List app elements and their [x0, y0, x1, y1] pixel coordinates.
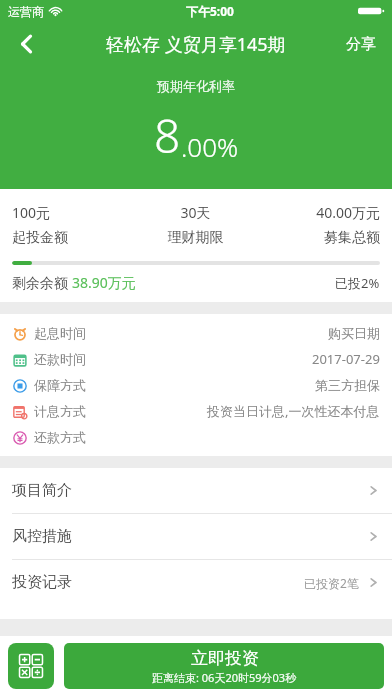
staticText: 还款时间: [34, 351, 86, 367]
staticText: 运营商: [8, 4, 44, 19]
button[interactable]: Back: [0, 22, 54, 66]
staticText: 立即投资: [191, 648, 259, 669]
staticText: 8: [154, 104, 181, 167]
staticText: 第三方担保: [315, 377, 380, 393]
staticText: 预期年化利率: [0, 78, 392, 94]
staticText: 100元: [12, 203, 134, 222]
button[interactable]: Calculator: [8, 643, 54, 689]
staticText: 项目简介: [12, 481, 72, 500]
staticText: 理财期限: [134, 229, 257, 247]
button[interactable]: 风控措施: [0, 514, 392, 559]
staticText: 保障方式: [34, 377, 86, 393]
button[interactable]: 计息方式: [0, 398, 392, 424]
button[interactable]: 项目简介: [0, 468, 392, 513]
staticText: 还款方式: [34, 429, 86, 445]
staticText: 40.00万元: [257, 203, 380, 222]
staticText: 已投资2笔: [304, 575, 359, 591]
staticText: 起息时间: [34, 325, 86, 341]
button[interactable]: 起息时间: [0, 320, 392, 346]
button[interactable]: 还款方式: [0, 424, 392, 450]
button[interactable]: 立即投资: [64, 643, 384, 689]
staticText: .00%: [181, 129, 239, 164]
button[interactable]: 保障方式: [0, 372, 392, 398]
button[interactable]: 投资记录: [0, 560, 392, 605]
staticText: 投资当日计息,一次性还本付息: [207, 402, 380, 420]
staticText: 投资记录: [12, 573, 72, 592]
staticText: 风控措施: [12, 527, 72, 546]
staticText: 起投金额: [12, 229, 134, 247]
staticText: 下午5:00: [186, 3, 234, 19]
button[interactable]: 分享: [330, 22, 392, 66]
staticText: 2017-07-29: [312, 350, 380, 368]
button[interactable]: 还款时间: [0, 346, 392, 372]
staticText: 购买日期: [328, 325, 380, 341]
staticText: 30天: [134, 203, 257, 222]
staticText: 已投2%: [335, 274, 380, 292]
staticText: 分享: [346, 35, 376, 54]
staticText: 轻松存 义贸月享145期: [106, 32, 286, 57]
staticText: 募集总额: [257, 229, 380, 247]
staticText: 距离结束: 06天20时59分03秒: [152, 670, 297, 685]
staticText: 38.90万元: [72, 273, 136, 292]
staticText: 计息方式: [34, 403, 86, 419]
staticText: 剩余余额: [12, 273, 72, 292]
